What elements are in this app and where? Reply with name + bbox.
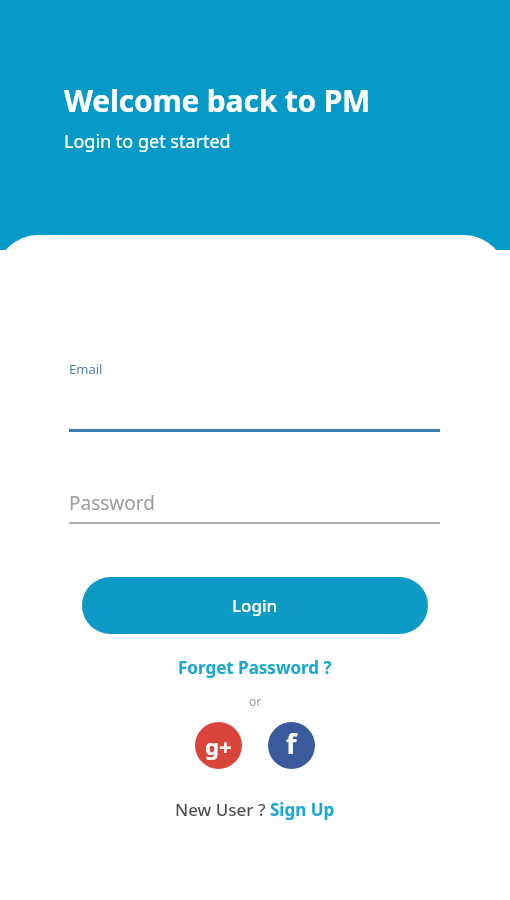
- button[interactable]: Sign in with Google: [195, 722, 242, 769]
- button[interactable]: Email: [69, 360, 440, 432]
- staticText: Email: [69, 360, 103, 378]
- staticText: Login to get started: [64, 129, 231, 154]
- button[interactable]: Password: [69, 490, 440, 524]
- button[interactable]: Sign in with Facebook: [268, 722, 315, 769]
- staticText: f: [286, 725, 297, 762]
- staticText: Sign Up: [270, 798, 335, 821]
- button[interactable]: Forget Password ?: [170, 652, 340, 683]
- staticText: Password: [69, 490, 155, 516]
- staticText: Login: [232, 594, 278, 617]
- staticText: New User ?: [175, 798, 270, 821]
- staticText: Forget Password ?: [178, 656, 332, 679]
- staticText: g+: [205, 731, 232, 761]
- staticText: or: [249, 693, 262, 709]
- button[interactable]: Login: [82, 577, 428, 634]
- staticText: Welcome back to PM: [64, 80, 371, 121]
- button[interactable]: Sign Up: [270, 798, 335, 821]
